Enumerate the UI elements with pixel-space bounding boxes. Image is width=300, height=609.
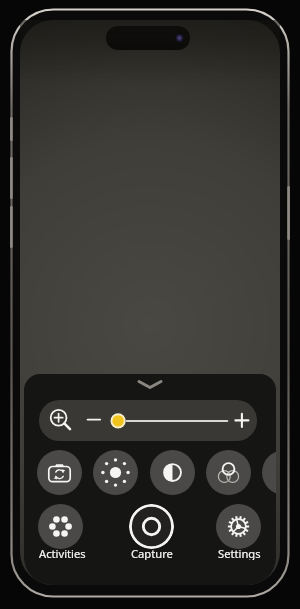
button[interactable]: [216, 504, 261, 549]
button[interactable]: [150, 450, 195, 495]
button[interactable]: [129, 504, 174, 549]
staticText: Activities: [39, 546, 86, 560]
staticText: Capture: [131, 546, 173, 560]
button[interactable]: [38, 504, 83, 549]
staticText: Settings: [218, 546, 261, 560]
button[interactable]: [93, 450, 138, 495]
button[interactable]: [206, 450, 251, 495]
button[interactable]: [37, 450, 82, 495]
button[interactable]: [39, 400, 257, 441]
button[interactable]: [262, 450, 276, 495]
